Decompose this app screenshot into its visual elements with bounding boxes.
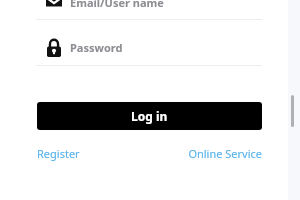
button[interactable]: Online Service: [175, 144, 266, 163]
button[interactable]: Password: [0, 30, 288, 65]
staticText: Online Service: [179, 146, 262, 161]
staticText: Email/User name: [70, 0, 164, 10]
button[interactable]: Register: [33, 144, 84, 163]
staticText: Log in: [131, 108, 168, 124]
staticText: Password: [70, 40, 123, 55]
other: Email: [46, 0, 62, 10]
other: Password: [47, 39, 61, 57]
button[interactable]: Log in: [37, 102, 262, 130]
button[interactable]: Email: [0, 0, 288, 20]
staticText: Register: [37, 146, 80, 161]
